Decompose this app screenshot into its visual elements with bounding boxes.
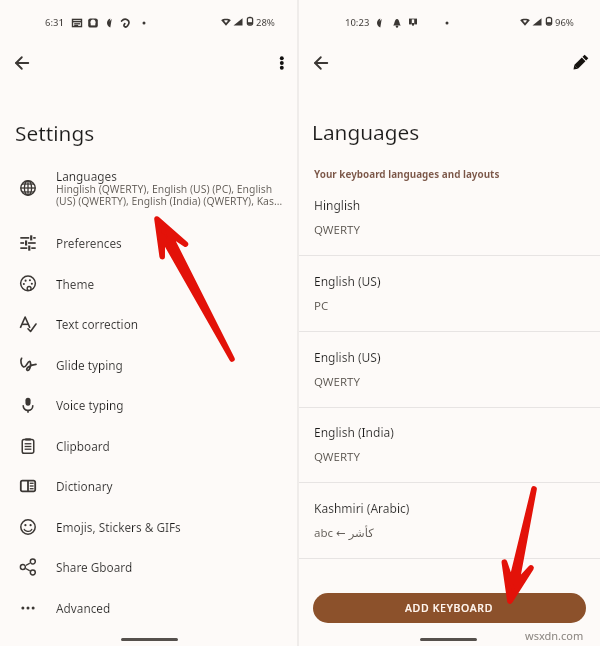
staticText: English (US) xyxy=(314,349,381,365)
staticText: QWERTY xyxy=(314,222,361,238)
button[interactable]: Advanced xyxy=(0,587,297,628)
staticText: Preferences xyxy=(56,235,122,251)
staticText: Advanced xyxy=(56,600,111,616)
button[interactable]: Clipboard xyxy=(0,425,297,466)
button[interactable]: Voice typing xyxy=(0,384,297,425)
button[interactable]: Dictionary xyxy=(0,465,297,506)
staticText: PC xyxy=(314,298,329,314)
staticText: 28% xyxy=(256,16,275,29)
staticText: Glide typing xyxy=(56,357,123,373)
button[interactable]: ADD KEYBOARD xyxy=(313,593,586,623)
staticText: Kashmiri (Arabic) xyxy=(314,500,410,516)
staticText: Voice typing xyxy=(56,397,124,413)
button[interactable]: Back xyxy=(307,49,335,77)
staticText: Languages xyxy=(312,118,420,146)
button[interactable]: More options xyxy=(267,49,295,77)
button[interactable]: Kashmiri (Arabic) xyxy=(299,495,600,571)
button[interactable]: Languages xyxy=(0,167,297,213)
staticText: Clipboard xyxy=(56,438,110,454)
staticText: Languages xyxy=(56,168,117,184)
button[interactable]: Text correction xyxy=(0,303,297,344)
button[interactable]: Share Gboard xyxy=(0,546,297,587)
button[interactable]: Emojis, Stickers & GIFs xyxy=(0,506,297,547)
button[interactable]: Hinglish xyxy=(299,192,600,268)
staticText: Hinglish (QWERTY), English (US) (PC), En… xyxy=(56,182,290,208)
staticText: wsxdn.com xyxy=(525,628,584,643)
staticText: Hinglish xyxy=(314,197,361,213)
staticText: ADD KEYBOARD xyxy=(405,601,494,615)
button[interactable]: Theme xyxy=(0,263,297,304)
button[interactable]: English (India) xyxy=(299,419,600,495)
staticText: Dictionary xyxy=(56,478,113,494)
staticText: 96% xyxy=(555,16,574,29)
staticText: English (India) xyxy=(314,424,394,440)
staticText: Settings xyxy=(15,119,95,147)
button[interactable]: Edit xyxy=(566,49,594,77)
button[interactable]: Preferences xyxy=(0,222,297,263)
staticText: 10:23 xyxy=(345,16,370,29)
staticText: QWERTY xyxy=(314,374,361,390)
button[interactable]: Back xyxy=(8,49,36,77)
staticText: Theme xyxy=(56,276,95,292)
staticText: Text correction xyxy=(56,316,139,332)
staticText: QWERTY xyxy=(314,449,361,465)
staticText: Your keyboard languages and layouts xyxy=(314,167,500,180)
staticText: Emojis, Stickers & GIFs xyxy=(56,519,181,535)
button[interactable]: English (US) xyxy=(299,344,600,420)
button[interactable]: Glide typing xyxy=(0,344,297,385)
staticText: abc ← كأشر xyxy=(314,525,374,541)
button[interactable]: English (US) xyxy=(299,268,600,344)
staticText: Share Gboard xyxy=(56,559,133,575)
staticText: English (US) xyxy=(314,273,381,289)
staticText: 6:31 xyxy=(45,16,64,29)
